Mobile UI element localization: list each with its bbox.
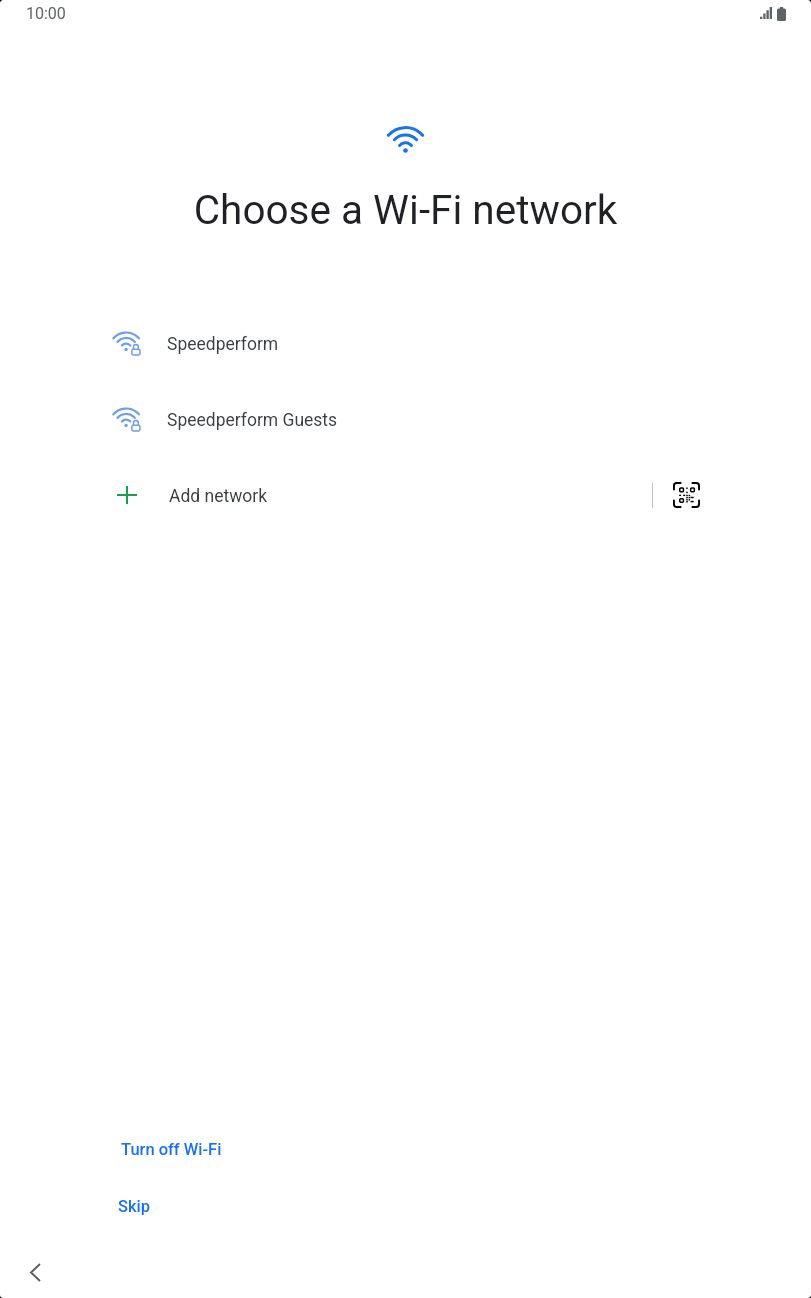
staticText: Turn off Wi-Fi — [121, 1140, 222, 1159]
button[interactable]: Speedperform Guests — [0, 382, 811, 458]
staticText: Speedperform — [167, 334, 279, 355]
staticText: Speedperform Guests — [167, 410, 338, 431]
staticText: 10:00 — [26, 4, 66, 23]
button[interactable]: Back — [11, 1248, 59, 1296]
button[interactable]: Add network — [0, 458, 620, 534]
button[interactable]: Turn off Wi-Fi — [112, 1133, 231, 1166]
button[interactable]: Skip — [109, 1190, 160, 1223]
button[interactable]: Scan QR code — [660, 468, 713, 521]
staticText: Add network — [169, 486, 268, 507]
staticText: Skip — [118, 1197, 151, 1216]
button[interactable]: Speedperform — [0, 306, 811, 382]
staticText: Choose a Wi-Fi network — [0, 186, 811, 233]
